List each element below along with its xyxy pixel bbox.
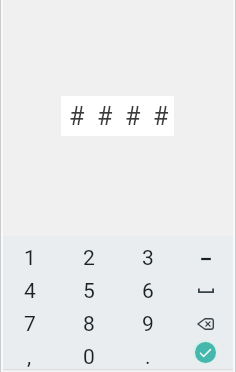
staticText: 9 (142, 312, 154, 337)
staticText: 6 (142, 279, 154, 304)
staticText: 5 (83, 279, 95, 304)
staticText: # (97, 102, 113, 131)
staticText: 7 (24, 312, 36, 337)
staticText: 0 (83, 345, 95, 370)
button[interactable]: Confirm (177, 341, 236, 372)
button[interactable]: 5 (59, 275, 118, 308)
button[interactable]: 4 (0, 275, 59, 308)
staticText: 3 (142, 246, 154, 271)
button[interactable]: 1 (0, 242, 59, 275)
button[interactable]: 7 (0, 308, 59, 341)
button[interactable]: Backspace (177, 308, 236, 341)
button[interactable]: 3 (118, 242, 177, 275)
staticText: 4 (24, 279, 36, 304)
button[interactable]: 8 (59, 308, 118, 341)
staticText: 1 (24, 246, 36, 271)
button[interactable]: Space (177, 275, 236, 308)
staticText: # (69, 102, 85, 131)
button[interactable]: 0 (59, 341, 118, 372)
button[interactable]: 9 (118, 308, 177, 341)
staticText: . (145, 345, 151, 370)
button[interactable]: . (118, 341, 177, 372)
button[interactable]: 2 (59, 242, 118, 275)
button[interactable]: 6 (118, 275, 177, 308)
staticText: 2 (83, 246, 95, 271)
staticText: # (153, 102, 169, 131)
button[interactable]: Minus (177, 242, 236, 275)
staticText: # (125, 102, 141, 131)
staticText: , (27, 345, 32, 370)
button[interactable]: , (0, 341, 59, 372)
button[interactable]: # (61, 96, 174, 136)
staticText: 8 (83, 312, 95, 337)
